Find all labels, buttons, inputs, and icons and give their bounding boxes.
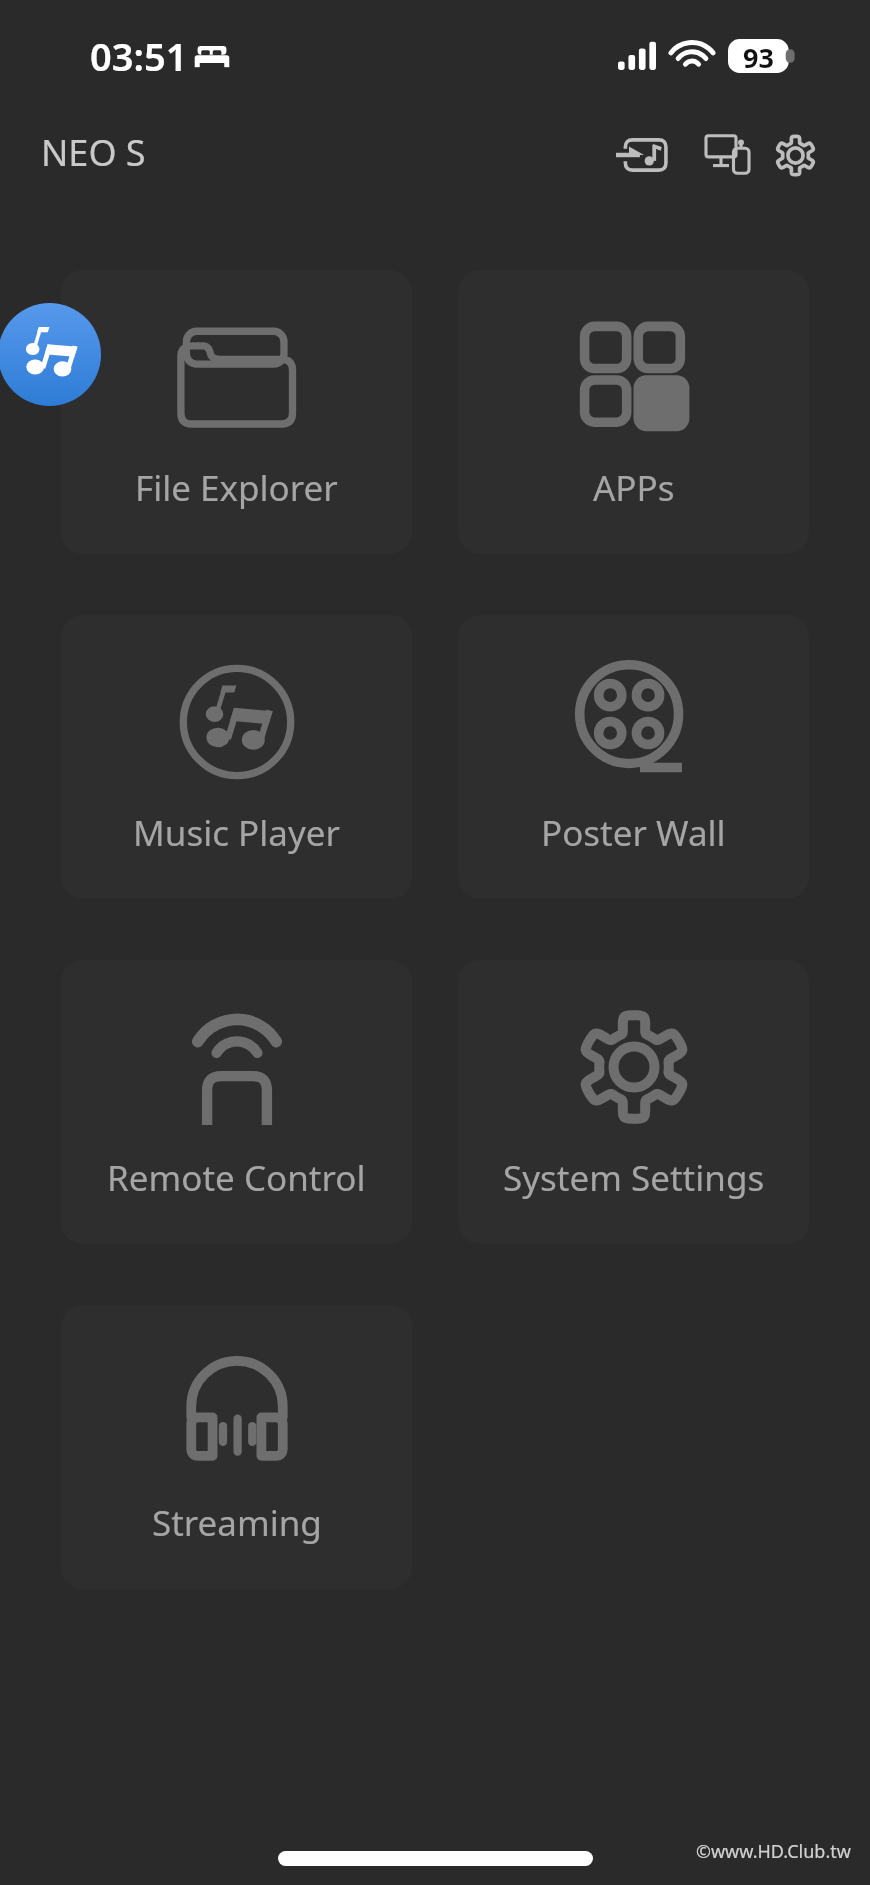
staticText: Remote Control	[107, 1154, 366, 1202]
button[interactable]: Streaming	[61, 1305, 412, 1589]
staticText: File Explorer	[135, 464, 338, 512]
button[interactable]: Now playing	[0, 303, 101, 406]
button[interactable]: Audio input	[610, 123, 674, 187]
staticText: ©www.HD.Club.tw	[696, 1839, 851, 1864]
staticText: NEO S	[41, 128, 146, 177]
button[interactable]: System Settings	[458, 960, 809, 1244]
button[interactable]: Poster Wall	[458, 615, 809, 899]
staticText: Poster Wall	[541, 809, 726, 857]
staticText: 03:51	[90, 30, 188, 82]
button[interactable]: File Explorer	[61, 270, 412, 554]
button[interactable]: Settings	[768, 123, 823, 187]
button[interactable]: Remote Control	[61, 960, 412, 1244]
button[interactable]: Music Player	[61, 615, 412, 899]
staticText: 93	[743, 39, 774, 73]
button[interactable]: Cast to device	[698, 123, 762, 187]
button[interactable]: APPs	[458, 270, 809, 554]
staticText: Music Player	[133, 809, 340, 857]
staticText: APPs	[593, 464, 675, 512]
staticText: Streaming	[152, 1499, 322, 1547]
staticText: System Settings	[503, 1154, 765, 1202]
